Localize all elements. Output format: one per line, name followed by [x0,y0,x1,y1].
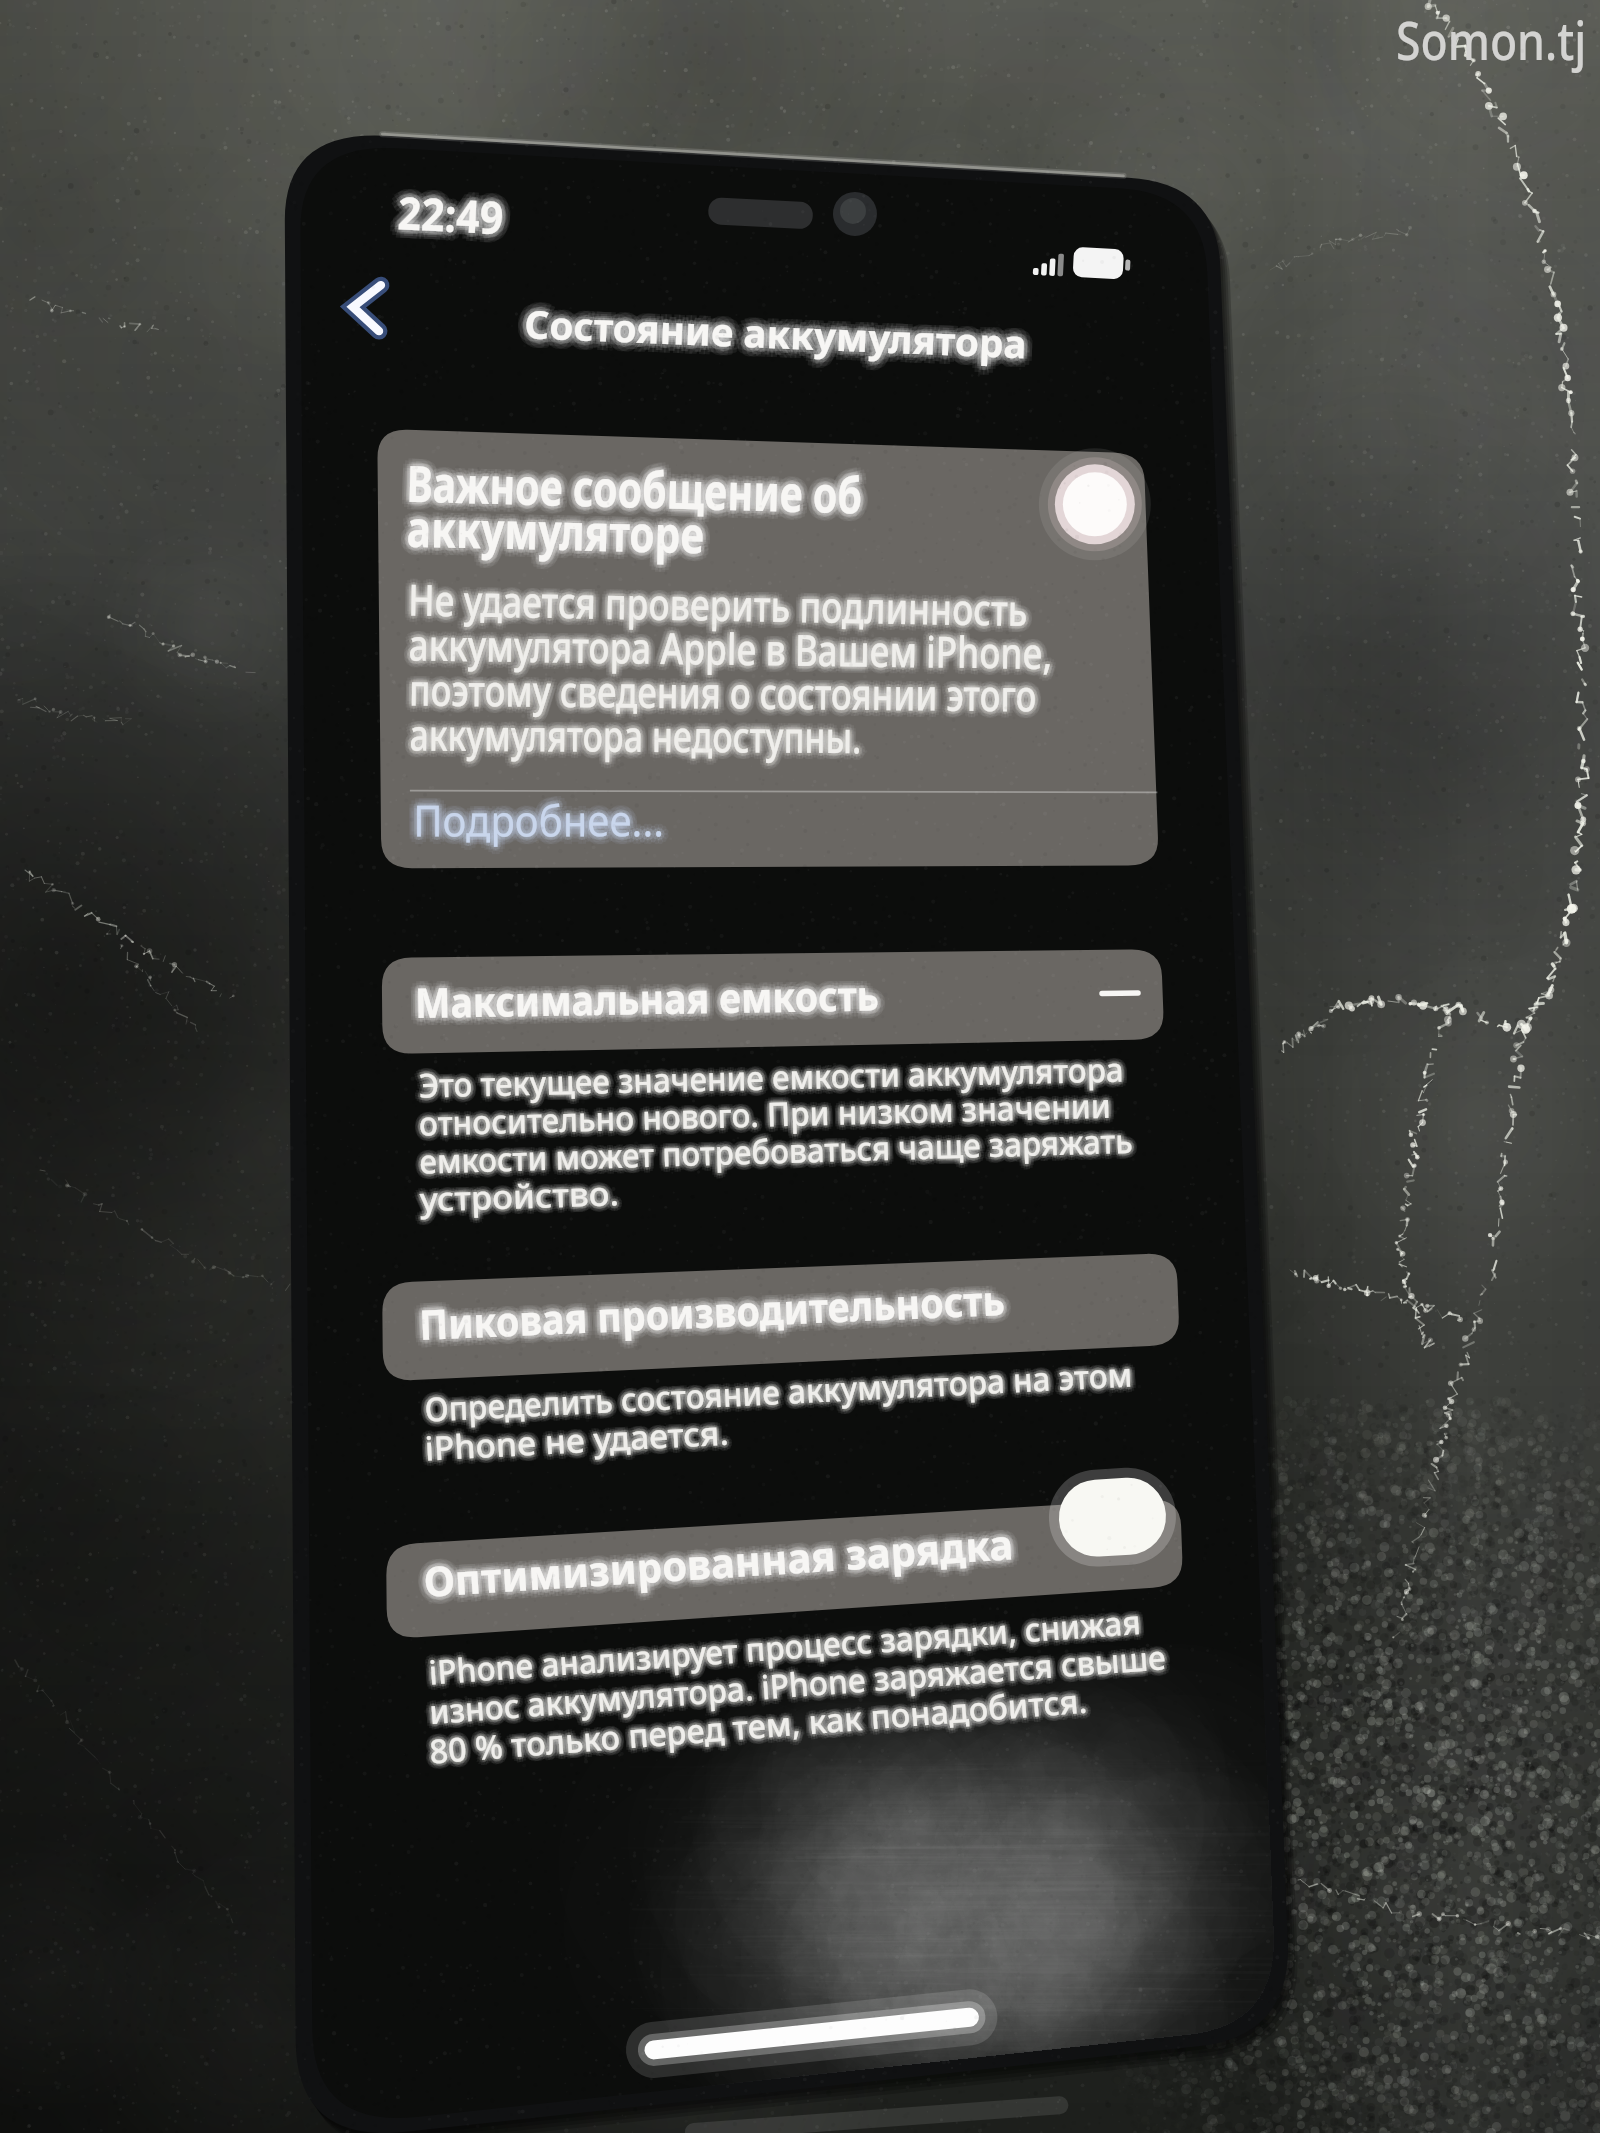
button[interactable]: Максимальная емкость [372,944,1172,1056]
button[interactable]: Оптимизированная зарядка [380,1486,1190,1598]
button[interactable]: Optimised charging toggle [1030,1494,1190,1594]
button[interactable]: Подробнее... [372,760,1162,870]
button[interactable]: Пиковая производительность [374,1272,1182,1384]
button[interactable]: Back [320,262,440,372]
